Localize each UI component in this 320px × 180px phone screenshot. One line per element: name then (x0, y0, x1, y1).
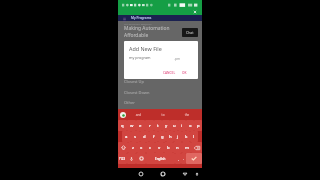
staticText: l (193, 134, 195, 140)
staticText: b (167, 145, 170, 151)
button[interactable]: Menu (120, 112, 126, 118)
staticText: , (178, 157, 179, 161)
staticText: Closest Up (124, 79, 144, 84)
button[interactable]: Shift (118, 142, 128, 153)
button[interactable]: CANCEL (162, 70, 177, 76)
staticText: AUTOMATION PROJECTS (124, 22, 152, 25)
staticText: u (173, 123, 176, 129)
button[interactable]: w (127, 120, 136, 131)
staticText: v (158, 145, 161, 151)
staticText: c (149, 145, 152, 151)
button[interactable]: ?123 (118, 153, 127, 164)
staticText: x (140, 145, 143, 151)
staticText: Affordable (124, 32, 149, 39)
button[interactable]: n (173, 142, 182, 153)
button[interactable]: o (186, 120, 194, 131)
staticText: a (125, 134, 128, 140)
staticText: d (143, 134, 146, 140)
button[interactable]: Other (124, 98, 198, 106)
button[interactable]: c (146, 142, 155, 153)
button[interactable]: g (158, 131, 166, 142)
staticText: y (165, 123, 168, 129)
button[interactable]: u (170, 120, 178, 131)
staticText: j (177, 134, 179, 140)
button[interactable]: Voice input (127, 153, 136, 164)
button[interactable]: Closest Up (124, 76, 198, 87)
button[interactable]: m (182, 142, 191, 153)
staticText: my program (129, 55, 151, 60)
button[interactable]: l (190, 131, 198, 142)
staticText: Making Automation (124, 25, 170, 32)
button[interactable]: j (174, 131, 182, 142)
staticText: s (134, 134, 137, 140)
staticText: i (181, 123, 183, 129)
button[interactable]: k (182, 131, 190, 142)
staticText: f (153, 134, 155, 140)
staticText: CANCEL (163, 71, 176, 75)
button[interactable]: English (146, 153, 175, 164)
button[interactable]: p (194, 120, 202, 131)
button[interactable]: Recents (181, 170, 189, 178)
staticText: ?123 (119, 157, 126, 161)
staticText: g (161, 134, 164, 140)
button[interactable]: OK (181, 70, 188, 76)
button[interactable]: f (149, 131, 158, 142)
staticText: Chat (186, 30, 194, 35)
staticText: h (169, 134, 172, 140)
staticText: .pm (174, 56, 180, 60)
button[interactable]: Backspace (191, 142, 202, 153)
button[interactable]: Closest Down (124, 87, 198, 98)
staticText: m (185, 145, 189, 151)
button[interactable]: z (128, 142, 137, 153)
staticText: z (132, 145, 134, 151)
button[interactable]: Close (192, 9, 197, 14)
button[interactable]: y (162, 120, 170, 131)
button[interactable]: d (140, 131, 149, 142)
button[interactable]: Show keyboard (193, 170, 201, 178)
button[interactable]: v (155, 142, 164, 153)
button[interactable]: a (122, 131, 131, 142)
staticText: Add New File (129, 45, 162, 52)
button[interactable]: q (118, 120, 127, 131)
staticText: to (151, 113, 175, 117)
button[interactable]: Enter (186, 153, 202, 164)
staticText: OK (182, 71, 187, 75)
button[interactable]: b (164, 142, 173, 153)
button[interactable]: s (131, 131, 140, 142)
staticText: r (149, 123, 151, 129)
button[interactable]: , (175, 153, 181, 164)
staticText: w (130, 123, 134, 129)
button[interactable]: Menu (123, 17, 126, 20)
staticText: k (185, 134, 188, 140)
staticText: p (197, 123, 200, 129)
staticText: e (139, 123, 142, 129)
staticText: the (175, 113, 199, 117)
staticText: . (183, 157, 184, 161)
button[interactable]: i (178, 120, 186, 131)
staticText: Other (124, 100, 135, 105)
button[interactable]: . (181, 153, 186, 164)
button[interactable]: r (145, 120, 154, 131)
button[interactable]: Back (137, 170, 145, 178)
staticText: English (155, 157, 166, 161)
staticText: My Programs (131, 16, 152, 20)
staticText: t (157, 123, 159, 129)
staticText: n (176, 145, 179, 151)
button[interactable]: Chat (182, 28, 198, 37)
button[interactable]: Settings (136, 153, 146, 164)
button[interactable]: Home (159, 170, 167, 178)
staticText: Closest Down (124, 90, 150, 95)
button[interactable]: x (137, 142, 146, 153)
staticText: o (189, 123, 192, 129)
button[interactable]: e (136, 120, 145, 131)
staticText: and (126, 113, 151, 117)
button[interactable]: h (166, 131, 174, 142)
button[interactable]: t (154, 120, 162, 131)
staticText: q (121, 123, 124, 129)
